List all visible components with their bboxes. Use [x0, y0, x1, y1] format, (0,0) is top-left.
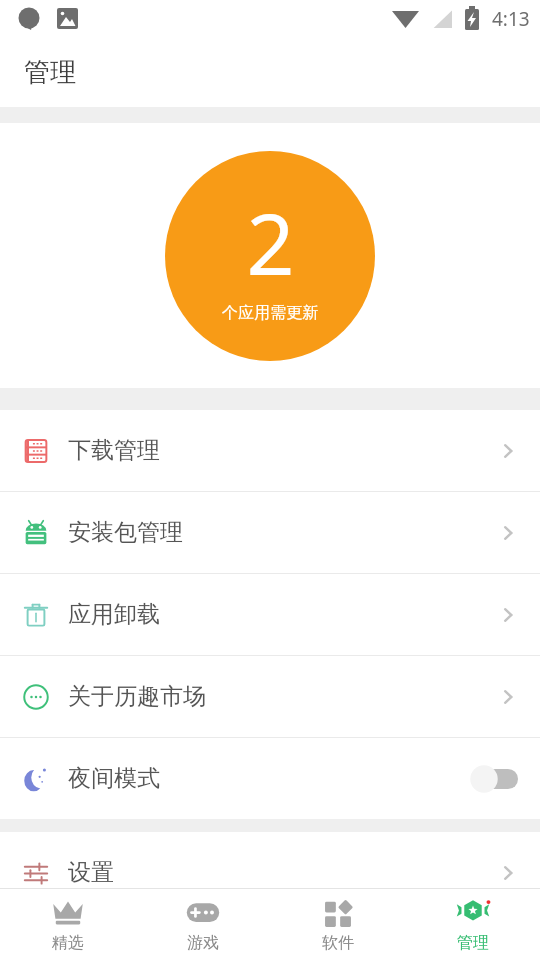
staticText: 应用卸载	[68, 600, 496, 629]
button[interactable]: 管理	[405, 889, 540, 960]
button[interactable]: 2	[165, 151, 375, 361]
staticText: 设置	[68, 858, 496, 887]
staticText: 个应用需更新	[222, 303, 318, 323]
staticText: 4:13	[492, 6, 530, 32]
staticText: 管理	[457, 933, 489, 953]
button[interactable]: 夜间模式	[0, 738, 540, 819]
staticText: 精选	[52, 933, 84, 953]
button[interactable]: 安装包管理	[0, 492, 540, 573]
staticText: 夜间模式	[68, 764, 470, 793]
button[interactable]: 设置	[0, 832, 540, 913]
staticText: 软件	[322, 933, 354, 953]
staticText: 下载管理	[68, 436, 496, 465]
button[interactable]: 精选	[0, 889, 135, 960]
staticText: 关于历趣市场	[68, 682, 496, 711]
button[interactable]: 夜间模式开关	[470, 765, 520, 793]
button[interactable]: 关于历趣市场	[0, 656, 540, 737]
staticText: 游戏	[187, 933, 219, 953]
button[interactable]: 下载管理	[0, 410, 540, 491]
button[interactable]: 游戏	[135, 889, 270, 960]
staticText: 管理	[24, 56, 76, 89]
other: 管理	[455, 896, 491, 932]
staticText: 2	[246, 185, 295, 299]
staticText: 安装包管理	[68, 518, 496, 547]
button[interactable]: 软件	[270, 889, 405, 960]
button[interactable]: 应用卸载	[0, 574, 540, 655]
